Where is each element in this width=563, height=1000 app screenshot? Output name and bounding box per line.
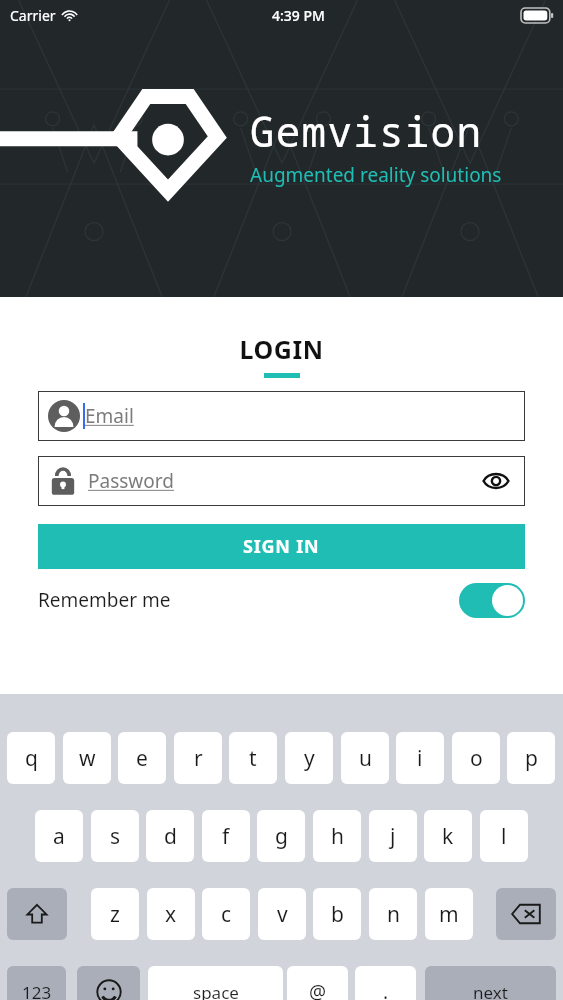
button[interactable]: h bbox=[313, 810, 361, 862]
staticText: l bbox=[501, 822, 507, 851]
button[interactable]: Emoji bbox=[77, 966, 140, 1000]
button[interactable]: Shift bbox=[7, 888, 67, 940]
staticText: next bbox=[473, 981, 508, 1000]
button[interactable]: y bbox=[285, 732, 333, 784]
button[interactable]: x bbox=[147, 888, 195, 940]
staticText: z bbox=[110, 900, 120, 929]
staticText: o bbox=[470, 744, 483, 773]
button[interactable]: SIGN IN bbox=[38, 524, 525, 569]
staticText: Remember me bbox=[38, 587, 171, 613]
button[interactable]: c bbox=[202, 888, 250, 940]
staticText: Carrier bbox=[10, 6, 56, 25]
button[interactable]: Remember me toggle bbox=[459, 583, 525, 618]
button[interactable]: k bbox=[424, 810, 472, 862]
button[interactable]: v bbox=[258, 888, 306, 940]
button[interactable]: g bbox=[257, 810, 305, 862]
staticText: . bbox=[383, 979, 389, 1000]
staticText: v bbox=[277, 900, 288, 929]
staticText: f bbox=[222, 822, 230, 851]
staticText: h bbox=[331, 822, 344, 851]
staticText: Augmented reality solutions bbox=[250, 162, 502, 188]
staticText: space bbox=[193, 981, 239, 1000]
button[interactable]: o bbox=[452, 732, 500, 784]
staticText: x bbox=[165, 900, 177, 929]
button[interactable]: t bbox=[229, 732, 277, 784]
staticText: j bbox=[390, 822, 396, 851]
button[interactable]: e bbox=[118, 732, 166, 784]
button[interactable]: i bbox=[396, 732, 444, 784]
button[interactable]: . bbox=[355, 966, 416, 1000]
staticText: g bbox=[275, 822, 288, 851]
button[interactable]: Password bbox=[38, 456, 525, 506]
button[interactable]: l bbox=[480, 810, 528, 862]
staticText: Password bbox=[88, 468, 174, 494]
staticText: p bbox=[525, 744, 538, 773]
staticText: Gemvision bbox=[250, 103, 483, 159]
staticText: c bbox=[221, 900, 232, 929]
button[interactable]: a bbox=[35, 810, 83, 862]
staticText: s bbox=[110, 822, 121, 851]
button[interactable]: s bbox=[91, 810, 139, 862]
button[interactable]: f bbox=[202, 810, 250, 862]
staticText: i bbox=[417, 744, 423, 773]
button[interactable]: 123 bbox=[7, 966, 66, 1000]
button[interactable]: r bbox=[174, 732, 222, 784]
staticText: d bbox=[164, 822, 177, 851]
button[interactable]: b bbox=[313, 888, 361, 940]
button[interactable]: z bbox=[91, 888, 139, 940]
button[interactable]: j bbox=[369, 810, 417, 862]
button[interactable]: u bbox=[341, 732, 389, 784]
staticText: q bbox=[25, 744, 38, 773]
staticText: 4:39 PM bbox=[272, 6, 325, 25]
staticText: n bbox=[387, 900, 400, 929]
button[interactable]: @ bbox=[287, 966, 348, 1000]
button[interactable]: d bbox=[146, 810, 194, 862]
button[interactable]: w bbox=[63, 732, 111, 784]
staticText: SIGN IN bbox=[243, 534, 320, 559]
button[interactable]: m bbox=[425, 888, 473, 940]
button[interactable]: n bbox=[369, 888, 417, 940]
staticText: a bbox=[53, 822, 65, 851]
button[interactable]: Email bbox=[38, 391, 525, 441]
button[interactable]: q bbox=[7, 732, 55, 784]
staticText: 123 bbox=[22, 981, 52, 1000]
staticText: Email bbox=[85, 403, 134, 429]
button[interactable]: p bbox=[507, 732, 555, 784]
button[interactable]: Show password bbox=[481, 466, 511, 496]
staticText: w bbox=[79, 744, 96, 773]
staticText: m bbox=[439, 900, 459, 929]
button[interactable]: space bbox=[148, 966, 283, 1000]
staticText: LOGIN bbox=[0, 332, 563, 366]
staticText: r bbox=[194, 744, 203, 773]
button[interactable]: Backspace bbox=[496, 888, 556, 940]
staticText: u bbox=[359, 744, 372, 773]
staticText: b bbox=[331, 900, 344, 929]
staticText: e bbox=[136, 744, 148, 773]
button[interactable]: next bbox=[425, 966, 556, 1000]
staticText: k bbox=[442, 822, 454, 851]
staticText: @ bbox=[309, 979, 327, 1000]
staticText: t bbox=[249, 744, 257, 773]
staticText: y bbox=[304, 744, 315, 773]
